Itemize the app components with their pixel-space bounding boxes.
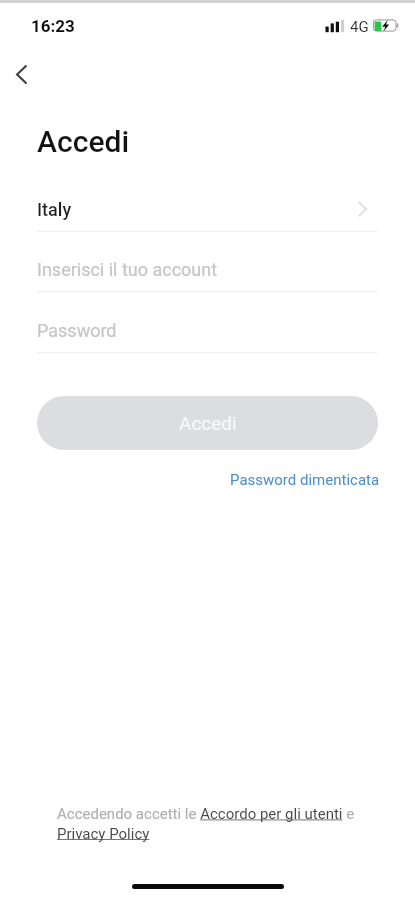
button[interactable]: Password dimenticata xyxy=(230,469,380,491)
staticText: 16:23 xyxy=(31,16,75,36)
button[interactable]: Back xyxy=(2,55,40,93)
button[interactable]: Italy xyxy=(37,187,378,231)
button[interactable]: Accedi xyxy=(37,396,378,450)
button[interactable]: Accedendo accetti le Accordo per gli ute… xyxy=(57,805,359,842)
button[interactable]: Inserisci il tuo account xyxy=(37,232,378,291)
staticText: Password dimenticata xyxy=(230,471,380,489)
staticText: Accedi xyxy=(37,124,130,159)
staticText: Accedendo accetti le Accordo per gli ute… xyxy=(57,805,359,842)
staticText: Accedi xyxy=(179,412,237,434)
staticText: Password xyxy=(37,320,117,341)
button[interactable]: Password xyxy=(37,292,378,352)
staticText: 4G xyxy=(350,18,369,36)
staticText: Italy xyxy=(37,199,72,220)
staticText: Inserisci il tuo account xyxy=(37,259,218,280)
